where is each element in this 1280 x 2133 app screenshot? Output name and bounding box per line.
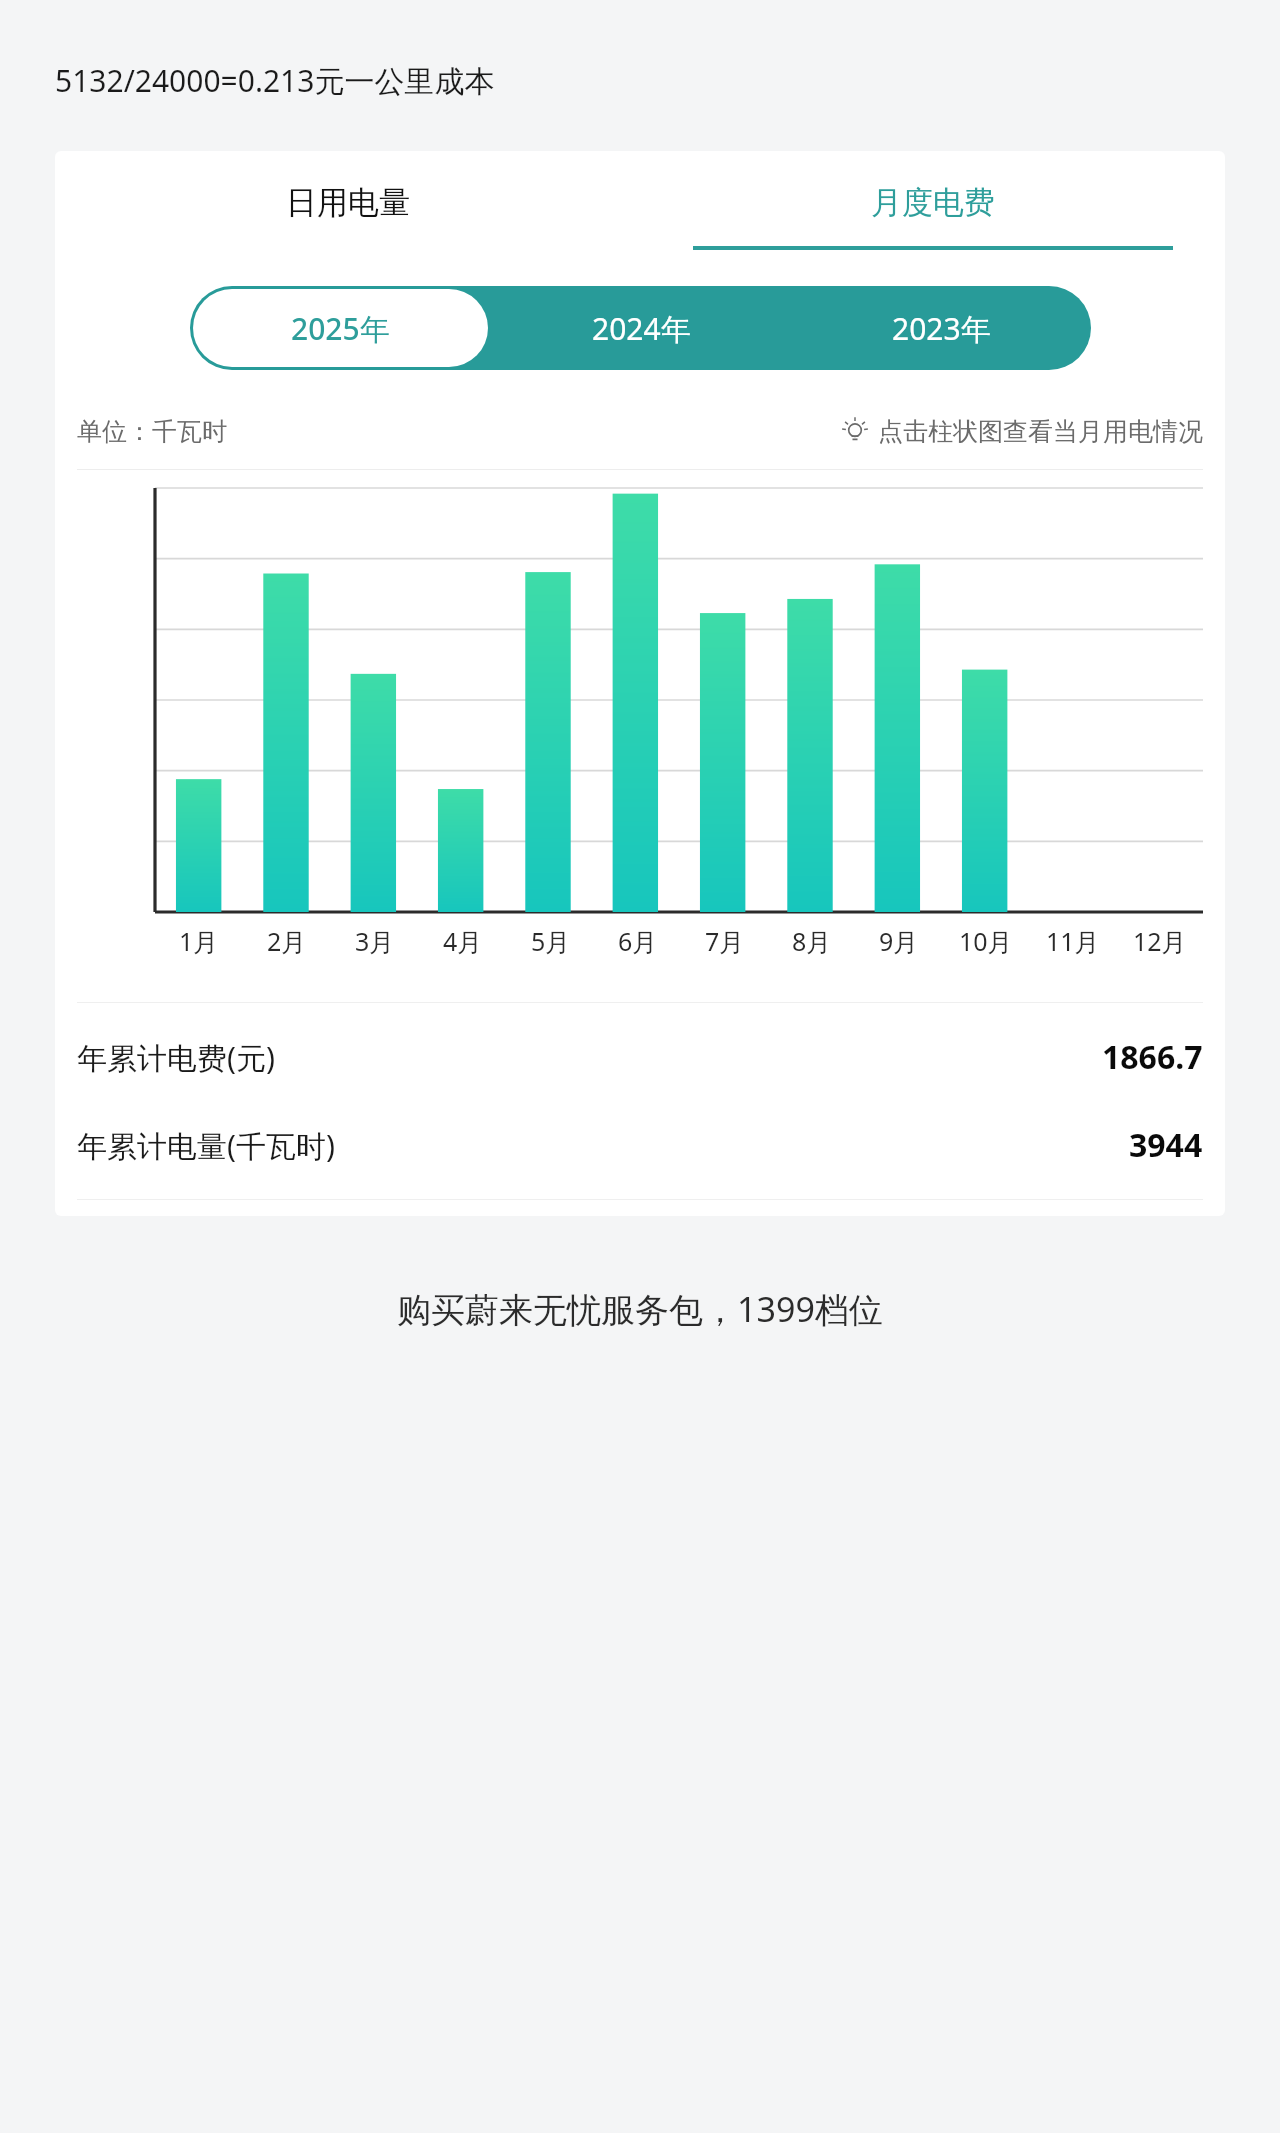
staticText: 6月	[618, 924, 658, 958]
staticText: 3月	[355, 924, 395, 958]
staticText: 2月	[267, 924, 307, 958]
button[interactable]: 日用电量	[55, 177, 640, 256]
staticText: 2025年	[291, 308, 390, 349]
button[interactable]: 提示	[840, 416, 1203, 447]
staticText: 年累计电量(千瓦时)	[77, 1125, 335, 1166]
staticText: 4月	[443, 924, 483, 958]
other: 提示	[840, 417, 870, 447]
staticText: 1月	[179, 924, 219, 958]
staticText: 8月	[792, 924, 832, 958]
staticText: 3944	[1129, 1123, 1203, 1167]
staticText: 点击柱状图查看当月用电情况	[878, 416, 1203, 447]
staticText: 年累计电费(元)	[77, 1037, 275, 1078]
button[interactable]: 年累计电费(元)	[55, 1029, 1225, 1085]
button[interactable]: 2023年	[791, 286, 1091, 370]
button[interactable]: 月度电费	[640, 177, 1225, 256]
button[interactable]: 年累计电量(千瓦时)	[55, 1117, 1225, 1173]
staticText: 9月	[879, 924, 919, 958]
staticText: 1866.7	[1102, 1035, 1203, 1079]
staticText: 10月	[959, 924, 1013, 958]
staticText: 7月	[705, 924, 745, 958]
staticText: 2023年	[892, 308, 991, 349]
button[interactable]: 2024年	[491, 286, 791, 370]
staticText: 2024年	[592, 308, 691, 349]
staticText: 单位：千瓦时	[77, 416, 227, 447]
staticText: 12月	[1133, 924, 1187, 958]
staticText: 购买蔚来无忧服务包，1399档位	[0, 1286, 1280, 1332]
staticText: 月度电费	[871, 183, 995, 222]
button[interactable]: 2025年	[193, 289, 488, 367]
staticText: 11月	[1046, 924, 1100, 958]
staticText: 5月	[531, 924, 571, 958]
staticText: 日用电量	[286, 183, 410, 222]
staticText: 5132/24000=0.213元一公里成本	[55, 60, 495, 101]
